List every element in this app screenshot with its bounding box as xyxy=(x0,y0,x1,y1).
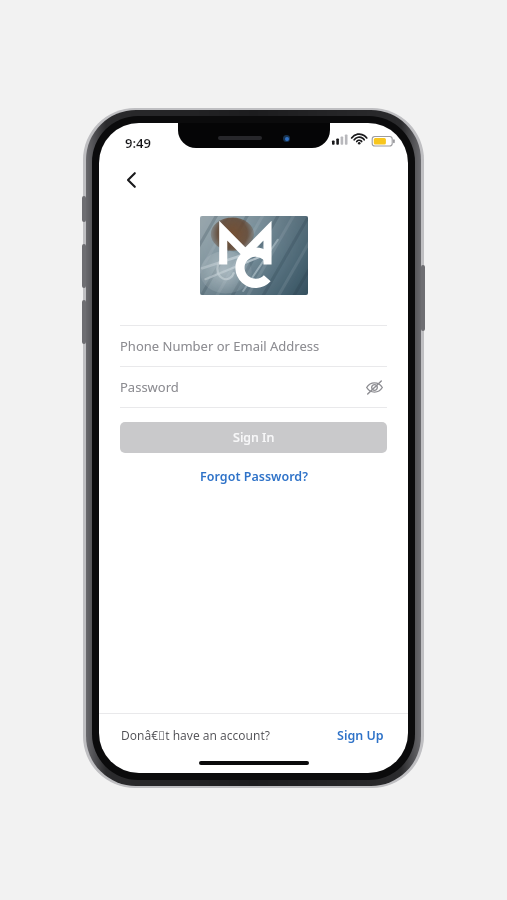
staticText: Sign Up xyxy=(337,727,384,744)
staticText: Sign In xyxy=(233,429,275,446)
staticText: Password xyxy=(120,378,361,396)
staticText: Donâ€t have an account? xyxy=(121,727,270,743)
button[interactable]: Sign Up xyxy=(335,723,386,748)
button[interactable]: Back xyxy=(113,161,151,199)
button[interactable]: Password xyxy=(120,367,387,407)
button[interactable]: Show password xyxy=(361,374,387,400)
staticText: Phone Number or Email Address xyxy=(120,337,320,355)
button[interactable]: Sign In xyxy=(120,422,387,453)
staticText: Forgot Password? xyxy=(200,468,308,485)
button[interactable]: Phone Number or Email Address xyxy=(120,326,387,366)
staticText: 9:49 xyxy=(125,134,151,152)
button[interactable]: Forgot Password? xyxy=(192,464,316,489)
